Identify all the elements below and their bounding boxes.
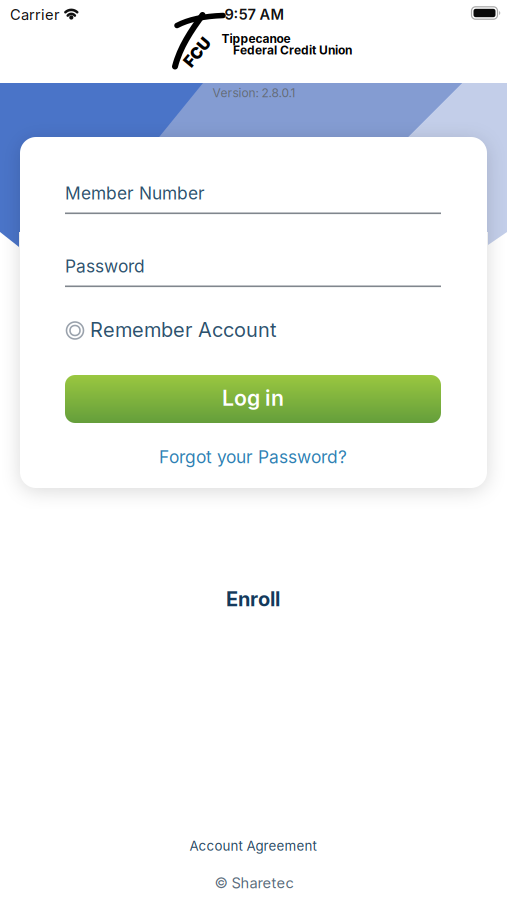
staticText: Carrier xyxy=(10,6,60,23)
staticText: Federal Credit Union xyxy=(233,43,352,57)
staticText: Password xyxy=(65,256,145,276)
button[interactable]: Account Agreement xyxy=(189,838,316,854)
staticText: Tippecanoe xyxy=(221,31,290,46)
staticText: © Sharetec xyxy=(214,874,293,892)
button[interactable]: Remember Account xyxy=(66,318,253,342)
staticText: Version: 2.8.0.1 xyxy=(212,86,295,100)
staticText: Remember Account xyxy=(90,318,277,342)
button[interactable]: Forgot your Password? xyxy=(159,447,347,467)
button[interactable]: Log in xyxy=(65,375,441,423)
staticText: FCU xyxy=(181,43,214,61)
staticText: Enroll xyxy=(226,587,280,611)
staticText: Member Number xyxy=(65,183,205,203)
staticText: Log in xyxy=(222,385,284,411)
button[interactable]: Enroll xyxy=(226,587,280,611)
button[interactable]: Password xyxy=(65,256,441,288)
staticText: Forgot your Password? xyxy=(159,447,347,467)
staticText: 9:57 AM xyxy=(224,6,284,23)
button[interactable]: Member Number xyxy=(65,183,441,215)
staticText: Account Agreement xyxy=(189,838,316,854)
